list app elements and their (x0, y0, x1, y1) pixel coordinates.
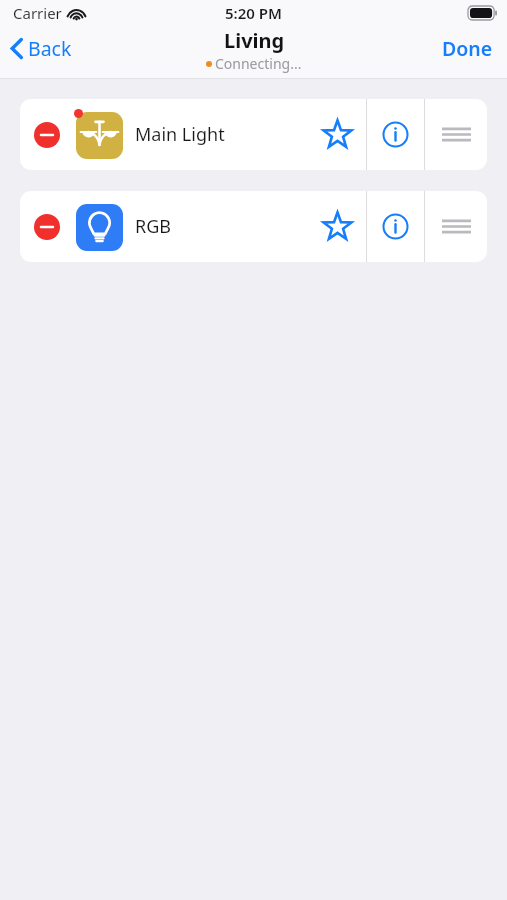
staticText: Connecting... (215, 54, 302, 73)
button[interactable]: Remove RGB (31, 211, 63, 243)
button[interactable]: Remove Main Light (20, 99, 309, 170)
staticText: Living (224, 27, 285, 54)
button[interactable]: Done (428, 30, 507, 67)
button[interactable]: Remove RGB (20, 191, 309, 262)
button[interactable]: Reorder (425, 99, 487, 170)
button[interactable]: Info (367, 191, 424, 262)
staticText: Back (28, 35, 72, 62)
staticText: Main Light (135, 122, 225, 147)
button[interactable]: Favorite (309, 99, 366, 170)
staticText: Done (442, 35, 493, 62)
button[interactable]: Reorder (425, 191, 487, 262)
button[interactable]: Remove Main Light (31, 119, 63, 151)
button[interactable]: Info (367, 99, 424, 170)
staticText: Carrier (13, 3, 62, 23)
staticText: RGB (135, 214, 171, 239)
button[interactable]: Favorite (309, 191, 366, 262)
button[interactable]: Back (0, 30, 84, 67)
staticText: 5:20 PM (225, 3, 282, 23)
